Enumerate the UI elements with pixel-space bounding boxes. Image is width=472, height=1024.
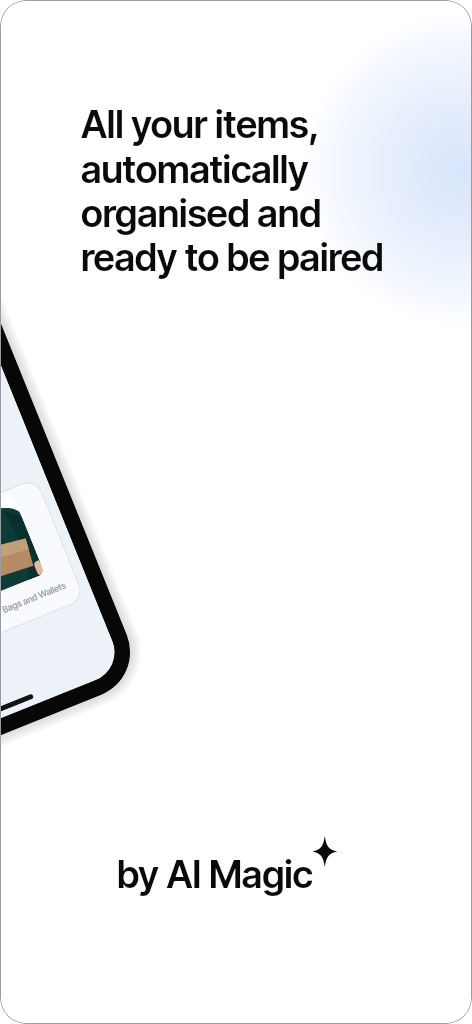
staticText: All your items, automatically organised … xyxy=(81,101,384,280)
button[interactable]: by AI Magic xyxy=(117,851,313,897)
staticText: by AI Magic xyxy=(117,851,313,897)
staticText: Bags and Wallets xyxy=(1,579,68,615)
